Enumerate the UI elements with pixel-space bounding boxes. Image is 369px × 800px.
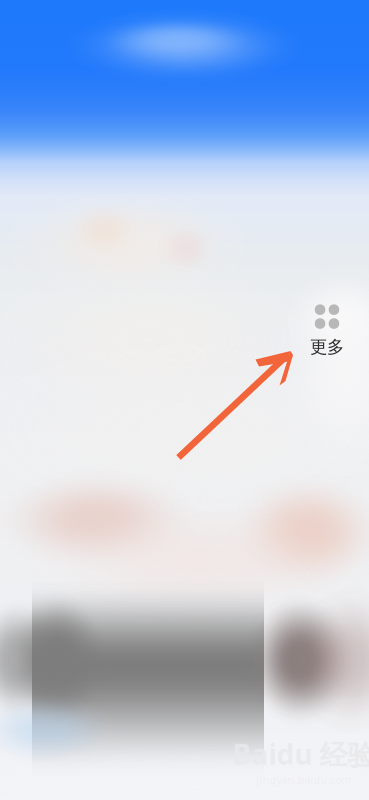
button[interactable]: 更多 [291, 299, 363, 363]
staticText: 更多 [310, 336, 344, 358]
staticText: Baidu 经验 [232, 735, 369, 773]
